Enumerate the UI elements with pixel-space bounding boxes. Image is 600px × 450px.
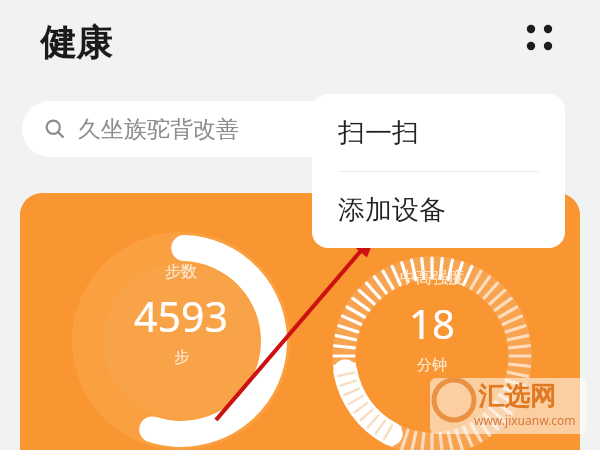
button[interactable]: 添加设备 [312, 172, 565, 248]
staticText: 中高强度 [400, 268, 464, 288]
button[interactable]: 久坐族驼背改善 [22, 101, 392, 157]
staticText: 添加设备 [338, 193, 446, 227]
button[interactable]: 扫一扫 [312, 94, 565, 171]
staticText: 汇选网 [478, 380, 556, 413]
staticText: 4593 [134, 288, 228, 344]
button[interactable] [20, 193, 580, 450]
staticText: 扫一扫 [338, 116, 419, 150]
staticText: 步 [174, 348, 189, 367]
staticText: 健康 [40, 20, 112, 65]
staticText: 分钟 [417, 356, 447, 375]
staticText: 久坐族驼背改善 [78, 115, 239, 144]
staticText: www.jixuanw.com [474, 412, 576, 428]
button[interactable]: More options [516, 14, 564, 62]
staticText: 18 [409, 296, 455, 350]
staticText: 步数 [165, 262, 197, 282]
